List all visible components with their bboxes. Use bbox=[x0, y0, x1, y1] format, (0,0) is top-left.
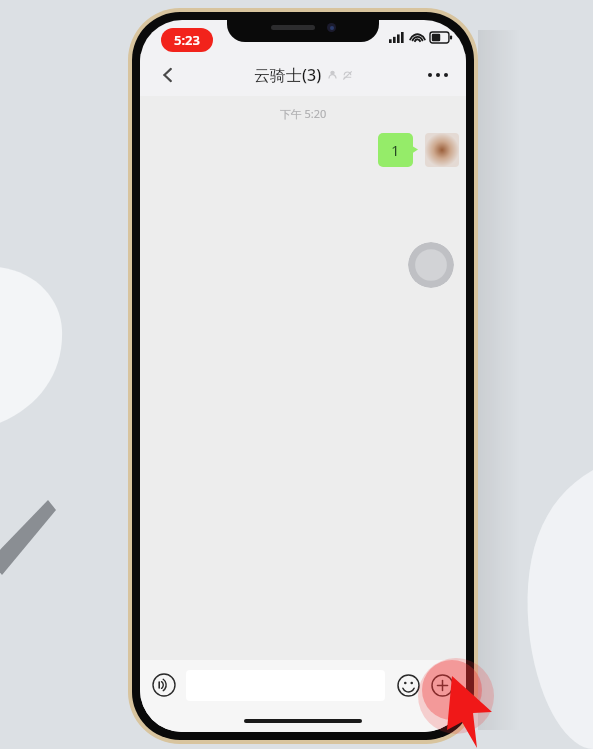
staticText: 云骑士(3) bbox=[254, 64, 322, 86]
button[interactable]: Voice input bbox=[149, 670, 179, 700]
button[interactable]: More options bbox=[418, 55, 458, 95]
staticText: 下午 5:20 bbox=[140, 106, 466, 121]
staticText: 1 bbox=[391, 140, 400, 160]
staticText: 5:23 bbox=[174, 31, 200, 49]
button[interactable]: Assistive touch bbox=[408, 242, 454, 288]
button[interactable]: More functions bbox=[427, 670, 457, 700]
button[interactable]: Back bbox=[148, 55, 188, 95]
button[interactable]: 1 bbox=[378, 133, 413, 167]
button[interactable]: Emoji bbox=[393, 670, 423, 700]
button[interactable]: Avatar bbox=[425, 133, 459, 167]
